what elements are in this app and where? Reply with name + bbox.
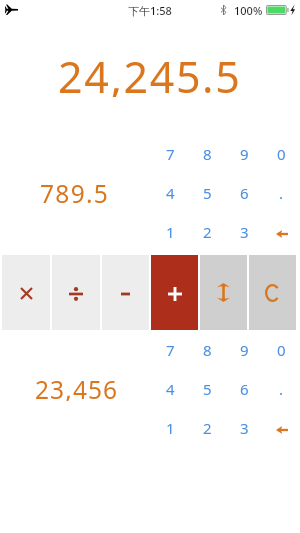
button[interactable]: 6 [226, 173, 263, 212]
button[interactable]: 0 [263, 134, 300, 173]
button[interactable]: 5 [189, 369, 226, 408]
button[interactable]: 5 [189, 173, 226, 212]
other: Backspace [276, 426, 288, 434]
button[interactable]: Backspace [263, 212, 300, 251]
staticText: 23,456 [35, 373, 119, 401]
button[interactable]: 4 [152, 173, 189, 212]
staticText: 6 [240, 183, 249, 203]
button[interactable]: Add [151, 255, 198, 330]
button[interactable]: 4 [152, 369, 189, 408]
staticText: 0 [277, 144, 286, 164]
button[interactable]: 1 [152, 408, 189, 447]
button[interactable]: Swap [200, 255, 247, 330]
staticText: 5 [203, 379, 212, 399]
button[interactable]: 7 [152, 134, 189, 173]
button[interactable]: Subtract [102, 255, 149, 330]
button[interactable]: 8 [189, 330, 226, 369]
staticText: 3 [240, 418, 249, 438]
button[interactable]: 2 [189, 212, 226, 251]
button[interactable]: Clear [249, 255, 296, 330]
staticText: 4 [166, 183, 175, 203]
other: Backspace [276, 230, 288, 238]
staticText: 7 [166, 340, 175, 360]
staticText: 9 [240, 144, 249, 164]
button[interactable]: 1 [152, 212, 189, 251]
button[interactable]: 3 [226, 408, 263, 447]
staticText: 0 [277, 340, 286, 360]
button[interactable]: 3 [226, 212, 263, 251]
staticText: 7 [166, 144, 175, 164]
button[interactable]: Divide [52, 255, 100, 330]
staticText: . [279, 183, 284, 203]
staticText: 4 [166, 379, 175, 399]
staticText: 1 [166, 418, 175, 438]
button[interactable]: Backspace [263, 408, 300, 447]
button[interactable]: . [263, 173, 300, 212]
staticText: 8 [203, 340, 212, 360]
button[interactable]: . [263, 369, 300, 408]
button[interactable]: 6 [226, 369, 263, 408]
button[interactable]: 8 [189, 134, 226, 173]
staticText: 9 [240, 340, 249, 360]
staticText: 下午1:58 [128, 3, 172, 18]
button[interactable]: 9 [226, 330, 263, 369]
staticText: 100% [234, 3, 263, 18]
staticText: 5 [203, 183, 212, 203]
button[interactable]: 9 [226, 134, 263, 173]
staticText: 1 [166, 222, 175, 242]
button[interactable]: 2 [189, 408, 226, 447]
staticText: . [279, 379, 284, 399]
staticText: 3 [240, 222, 249, 242]
staticText: 8 [203, 144, 212, 164]
button[interactable]: 7 [152, 330, 189, 369]
staticText: 2 [203, 418, 212, 438]
staticText: 789.5 [40, 177, 110, 205]
button[interactable]: 0 [263, 330, 300, 369]
staticText: 24,245.5 [58, 47, 242, 97]
staticText: 6 [240, 379, 249, 399]
staticText: 2 [203, 222, 212, 242]
button[interactable]: Multiply [2, 255, 50, 330]
